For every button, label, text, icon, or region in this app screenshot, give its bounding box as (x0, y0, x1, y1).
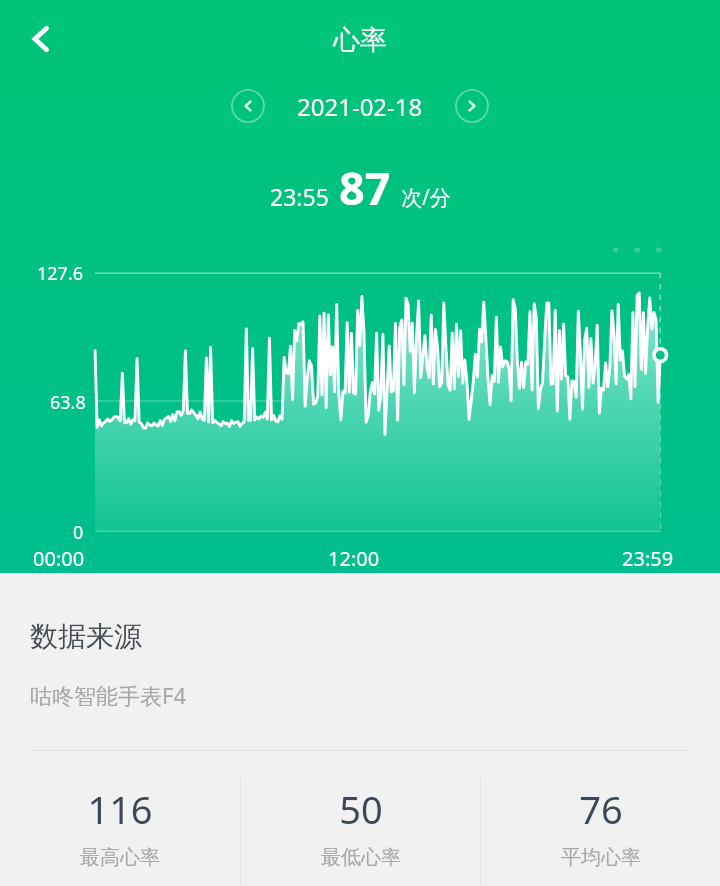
button[interactable]: Previous day (231, 89, 265, 123)
button[interactable]: 50 (241, 777, 480, 870)
button[interactable]: 76 (481, 777, 720, 870)
staticText: 心率 (333, 23, 387, 57)
staticText: 0 (73, 520, 84, 545)
staticText: 23:59 (622, 545, 674, 572)
staticText: 数据来源 (30, 619, 142, 654)
staticText: 23:55 (270, 181, 329, 212)
button[interactable]: 116 (0, 777, 240, 870)
staticText: 12:00 (328, 545, 380, 572)
staticText: 平均心率 (561, 845, 641, 870)
staticText: 咕咚智能手表F4 (30, 680, 187, 710)
staticText: 87 (339, 157, 391, 218)
staticText: 最低心率 (321, 845, 401, 870)
staticText: 127.6 (37, 261, 84, 286)
button[interactable]: Next day (455, 89, 489, 123)
button[interactable]: Back (10, 8, 72, 70)
staticText: 次/分 (401, 183, 451, 212)
staticText: 00:00 (33, 545, 85, 572)
staticText: 最高心率 (80, 845, 160, 870)
staticText: 2021-02-18 (297, 90, 423, 123)
staticText: 50 (339, 783, 383, 835)
staticText: 116 (87, 783, 153, 835)
staticText: 76 (579, 783, 623, 835)
staticText: 63.8 (50, 390, 86, 415)
